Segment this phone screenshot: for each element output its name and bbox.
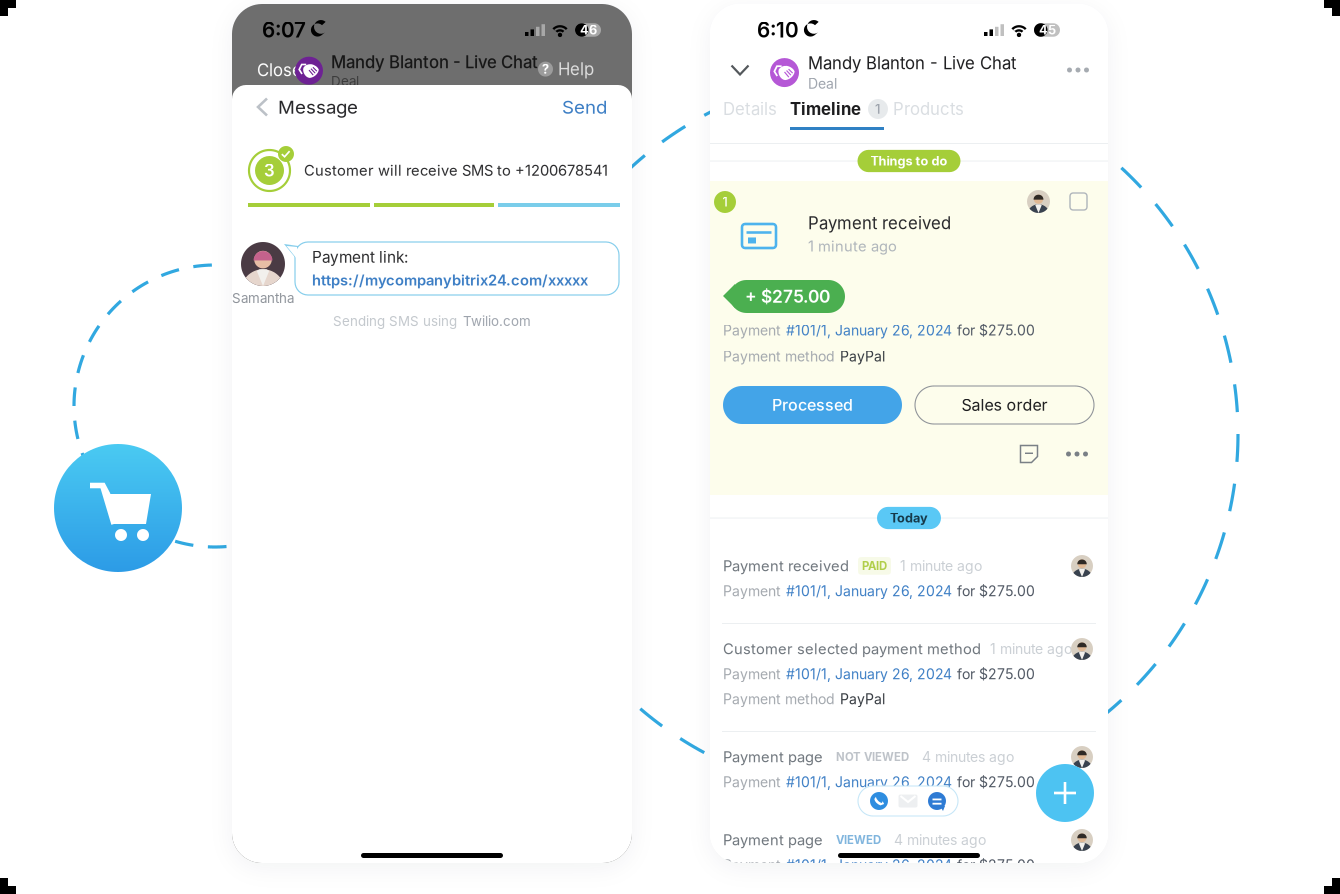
staticText: 1: [722, 194, 727, 210]
staticText: 4 minutes ago: [894, 831, 986, 848]
button[interactable]: Note: [1016, 441, 1042, 467]
staticText: 45: [1039, 22, 1056, 38]
staticText: PAID: [862, 559, 887, 573]
staticText: 6:10: [757, 17, 799, 42]
staticText: Payment: [723, 666, 781, 683]
staticText: Timeline: [790, 99, 861, 119]
button[interactable]: Send: [562, 93, 607, 121]
staticText: PayPal: [840, 691, 885, 708]
button[interactable]: Email: [898, 792, 918, 810]
staticText: Products: [893, 99, 964, 119]
staticText: Payment link:: [312, 248, 408, 266]
staticText: #101/1, January 26, 2024: [786, 583, 952, 600]
staticText: #101/1, January 26, 2024: [786, 774, 952, 791]
staticText: Payment: [723, 774, 781, 791]
staticText: 3: [264, 160, 275, 181]
staticText: Details: [723, 99, 777, 119]
staticText: Help: [558, 59, 594, 79]
staticText: 1 minute ago: [900, 557, 982, 574]
button[interactable]: More actions: [1064, 441, 1090, 467]
button[interactable]: More: [1060, 54, 1096, 86]
staticText: Send: [562, 96, 607, 118]
button[interactable]: Details: [723, 96, 777, 122]
staticText: NOT VIEWED: [836, 750, 909, 764]
staticText: #101/1, January 26, 2024: [786, 666, 952, 683]
staticText: Close: [257, 60, 302, 80]
staticText: Sales order: [961, 395, 1047, 415]
staticText: #101/1, January 26, 2024: [786, 857, 952, 874]
staticText: Payment: [723, 322, 781, 339]
staticText: Customer will receive SMS to +1200678541: [304, 162, 608, 179]
button[interactable]: Message: [258, 93, 358, 121]
staticText: for $275.00: [957, 322, 1035, 339]
button[interactable]: New item: [1036, 764, 1094, 822]
button[interactable]: Payment page: [710, 823, 1108, 894]
staticText: for $275.00: [957, 857, 1035, 874]
staticText: for $275.00: [957, 774, 1035, 791]
staticText: https://mycompanybitrix24.com/xxxxx: [312, 271, 588, 289]
button[interactable]: Products: [893, 96, 964, 122]
staticText: Things to do: [870, 153, 947, 169]
staticText: Mandy Blanton - Live Chat: [331, 52, 538, 72]
staticText: Samantha: [232, 290, 294, 306]
staticText: Payment page: [723, 748, 823, 766]
button[interactable]: Timeline: [790, 96, 888, 122]
staticText: Deal: [331, 73, 359, 89]
staticText: Mandy Blanton - Live Chat: [808, 53, 1016, 73]
staticText: Twilio.com: [463, 313, 531, 329]
staticText: Payment page: [723, 831, 823, 849]
staticText: #101/1, January 26, 2024: [786, 322, 952, 339]
staticText: Payment: [723, 857, 781, 874]
staticText: for $275.00: [957, 666, 1035, 683]
staticText: PayPal: [840, 348, 885, 365]
button[interactable]: Call: [869, 791, 889, 811]
staticText: 46: [580, 22, 597, 38]
staticText: 4 minutes ago: [922, 748, 1014, 765]
button[interactable]: Payment received: [710, 549, 1108, 621]
staticText: 1: [875, 101, 881, 117]
staticText: Processed: [772, 395, 853, 415]
staticText: Payment method: [723, 691, 835, 708]
staticText: 1 minute ago: [808, 237, 897, 255]
staticText: 6:07: [262, 17, 306, 42]
button[interactable]: Sales order: [915, 386, 1094, 424]
staticText: Payment method: [723, 348, 835, 365]
staticText: Sending SMS using: [333, 313, 457, 329]
button[interactable]: Collapse: [722, 54, 758, 86]
staticText: Payment: [723, 583, 781, 600]
button[interactable]: Payment page: [710, 740, 1108, 812]
staticText: Message: [278, 96, 358, 118]
staticText: ?: [542, 61, 549, 77]
button[interactable]: Customer selected payment method: [710, 632, 1108, 730]
staticText: VIEWED: [836, 833, 881, 847]
staticText: 1 minute ago: [990, 640, 1072, 657]
staticText: Deal: [808, 75, 837, 92]
button[interactable]: Processed: [723, 386, 902, 424]
button[interactable]: Message: [927, 791, 947, 811]
staticText: Customer selected payment method: [723, 640, 981, 658]
staticText: Payment received: [723, 557, 849, 575]
staticText: for $275.00: [957, 583, 1035, 600]
staticText: Payment received: [808, 213, 951, 233]
staticText: Today: [890, 510, 928, 526]
staticText: + $275.00: [745, 286, 830, 307]
